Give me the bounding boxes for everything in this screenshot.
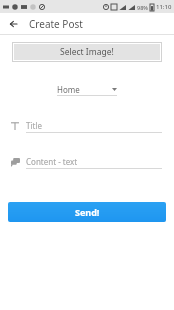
staticText: Home <box>57 84 80 95</box>
staticText: Select Image! <box>60 46 114 58</box>
button[interactable]: Send! <box>8 202 166 222</box>
button[interactable]: Home <box>57 83 117 96</box>
staticText: 98% <box>137 4 148 11</box>
button[interactable]: Select Image! <box>14 44 160 60</box>
staticText: Send! <box>75 206 100 218</box>
staticText: Create Post <box>29 17 83 31</box>
staticText: Content - text <box>26 156 78 167</box>
button[interactable]: Content - text <box>26 155 162 169</box>
button[interactable]: Back <box>5 16 21 32</box>
staticText: Title <box>26 120 42 131</box>
staticText: 11:10 <box>156 3 172 11</box>
button[interactable]: Title <box>26 119 162 133</box>
